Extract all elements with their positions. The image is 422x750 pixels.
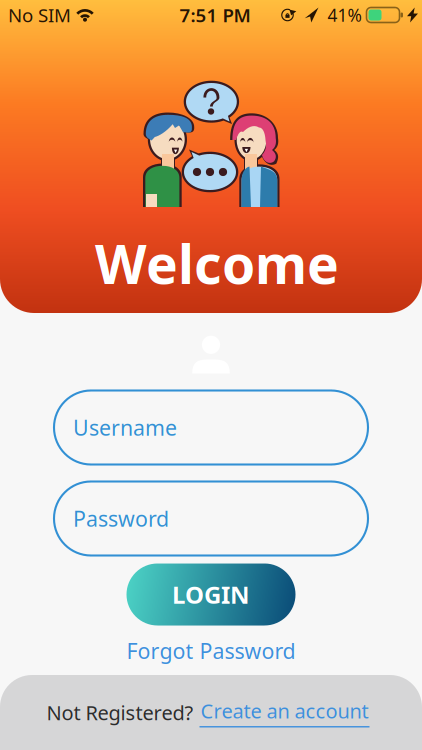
staticText: Not Registered? [46,699,193,726]
staticText: 7:51 PM [179,3,250,27]
staticText: No SIM [8,3,71,27]
staticText: Welcome [95,228,339,299]
button[interactable]: Forgot Password [116,634,305,667]
button[interactable]: Create an account [199,697,369,727]
staticText: Password [73,504,169,533]
button[interactable]: Password [54,481,368,555]
staticText: Create an account [200,697,368,724]
button[interactable]: LOGIN [126,563,295,625]
button[interactable]: Username [54,390,368,464]
staticText: Forgot Password [126,636,295,665]
staticText: 41% [327,3,361,26]
staticText: Username [73,413,177,442]
staticText: LOGIN [172,579,250,610]
